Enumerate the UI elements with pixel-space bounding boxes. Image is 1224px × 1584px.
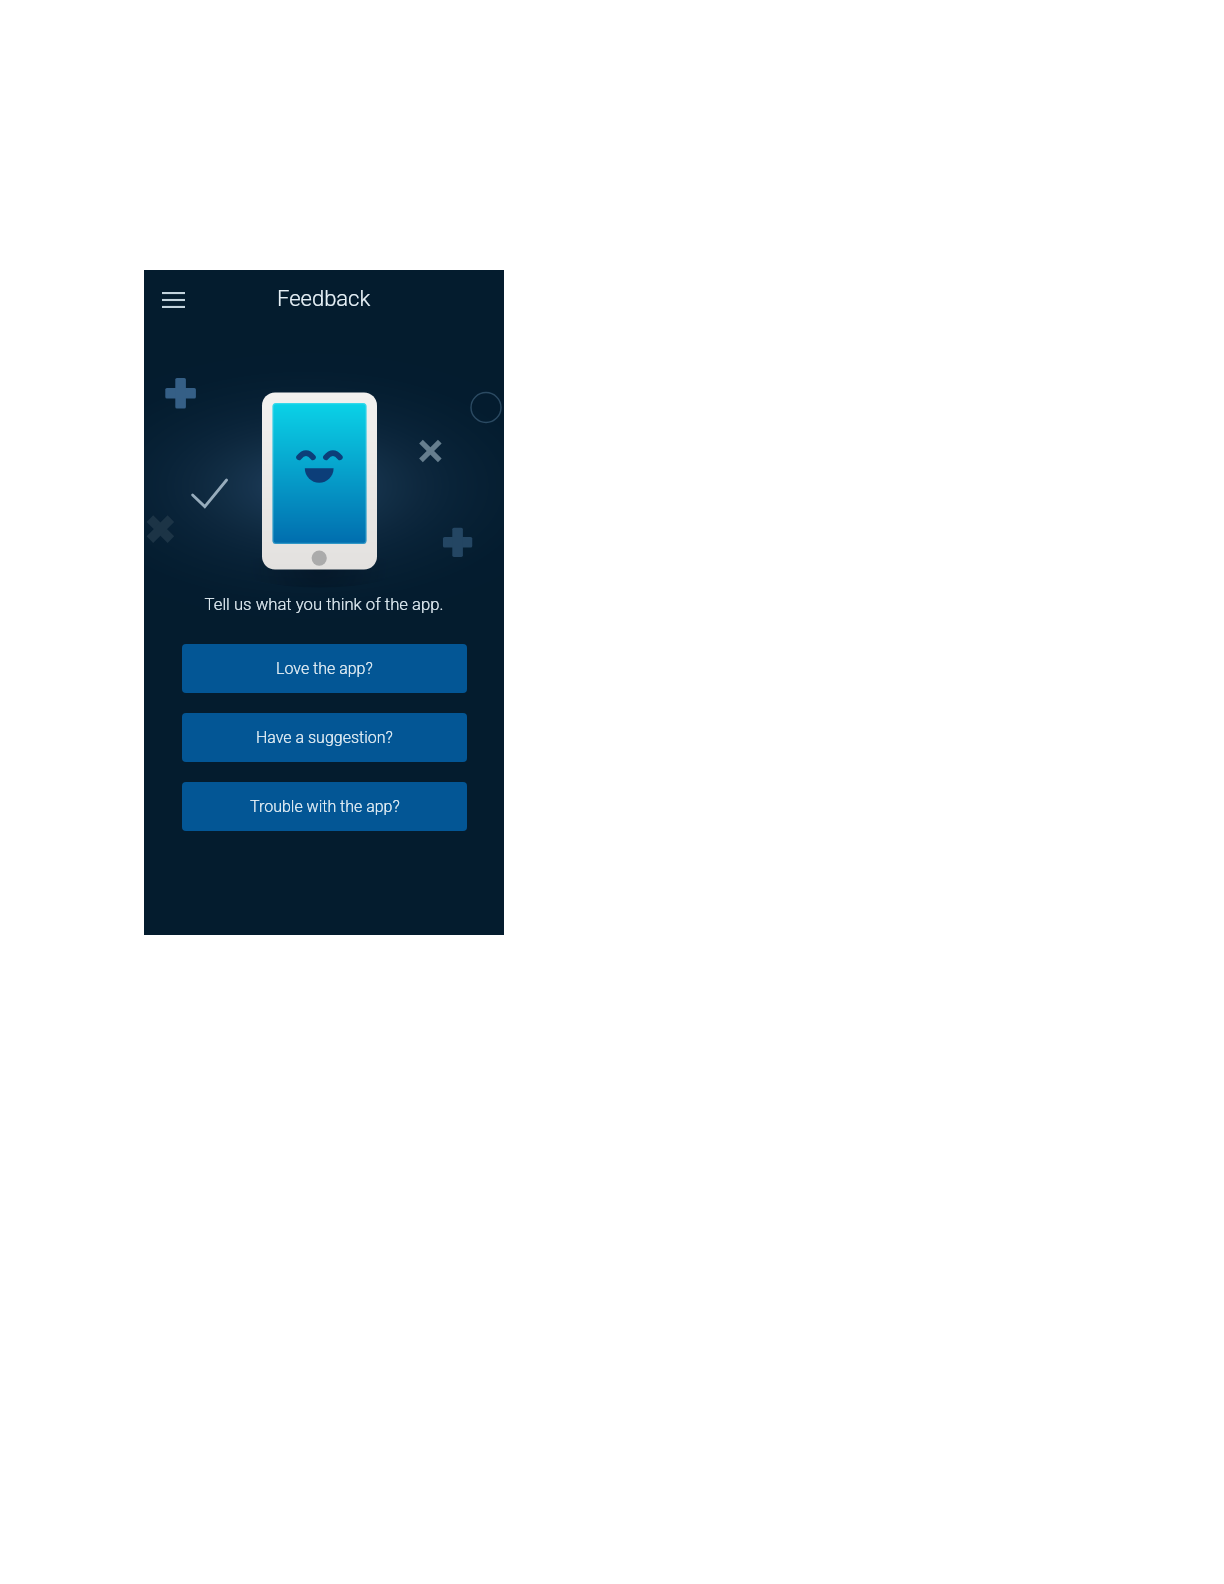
staticText: Feedback	[277, 286, 371, 312]
button[interactable]: Have a suggestion?	[182, 713, 467, 762]
staticText: Trouble with the app?	[250, 797, 400, 816]
staticText: Tell us what you think of the app.	[144, 595, 504, 615]
button[interactable]: Love the app?	[182, 644, 467, 693]
button[interactable]: Menu	[150, 275, 194, 319]
staticText: Have a suggestion?	[256, 728, 393, 747]
staticText: Love the app?	[276, 659, 373, 678]
button[interactable]: Trouble with the app?	[182, 782, 467, 831]
